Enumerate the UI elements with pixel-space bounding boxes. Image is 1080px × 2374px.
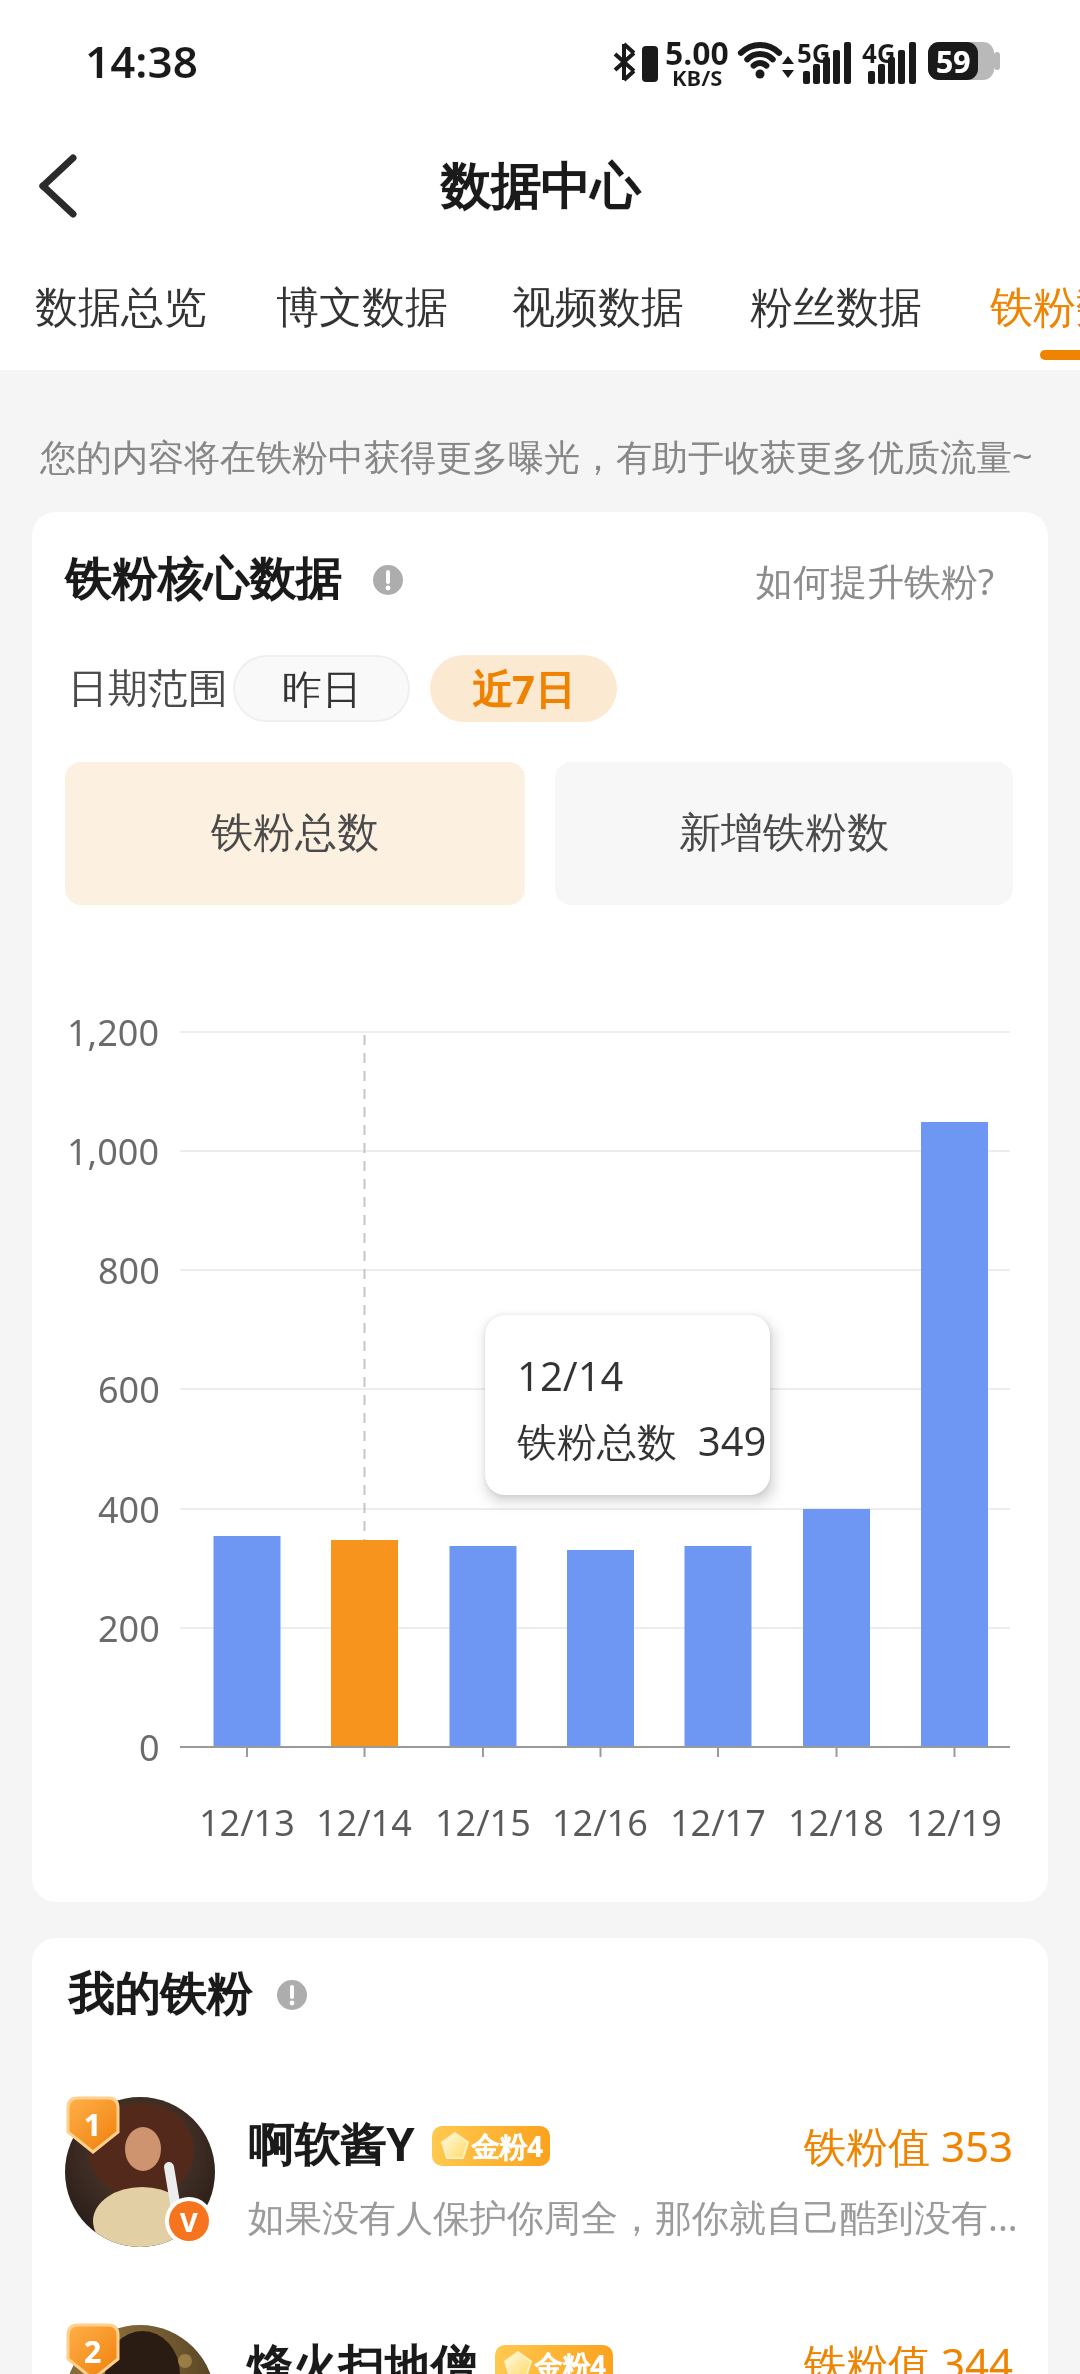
staticText: V — [180, 2203, 198, 2240]
staticText: 博文数据 — [276, 281, 448, 335]
staticText: 数据总览 — [35, 281, 207, 335]
staticText: KB/S — [672, 62, 723, 92]
staticText: 2 — [84, 2331, 102, 2372]
staticText: 1 — [84, 2104, 102, 2145]
staticText: 12/13 — [199, 1798, 295, 1847]
staticText: 5G — [797, 35, 831, 70]
staticText: 铁粉总数 — [211, 807, 379, 860]
staticText: 金粉4 — [534, 2346, 607, 2374]
button[interactable]: 昨日 — [233, 655, 410, 722]
staticText: 昨日 — [282, 664, 362, 714]
staticText: 12/19 — [906, 1798, 1002, 1847]
staticText: 12/18 — [788, 1798, 884, 1847]
staticText: 0 — [139, 1723, 160, 1772]
staticText: 如何提升铁粉? — [756, 555, 995, 606]
button[interactable]: 近7日 — [430, 655, 617, 722]
staticText: 12/15 — [435, 1798, 531, 1847]
staticText: 1,000 — [67, 1127, 160, 1176]
staticText: 日期范围 — [68, 663, 228, 713]
staticText: 铁粉核心数据 — [65, 551, 341, 609]
staticText: 啊软酱Y — [248, 2112, 415, 2175]
staticText: 800 — [98, 1246, 160, 1295]
staticText: 12/14 — [316, 1798, 412, 1847]
staticText: 1,200 — [67, 1008, 160, 1057]
staticText: 200 — [98, 1604, 160, 1653]
staticText: 14:38 — [85, 31, 198, 91]
staticText: 数据中心 — [440, 156, 640, 219]
staticText: 我的铁粉 — [68, 1966, 252, 2024]
staticText: 视频数据 — [512, 281, 684, 335]
staticText: 铁粉值 344 — [804, 2334, 1013, 2374]
staticText: 您的内容将在铁粉中获得更多曝光，有助于收获更多优质流量~ — [40, 432, 1033, 481]
staticText: 12/14 — [517, 1348, 624, 1402]
staticText: 4G — [862, 35, 896, 70]
button[interactable] — [35, 270, 207, 346]
button[interactable] — [750, 270, 922, 346]
button[interactable]: 新增铁粉数 — [555, 762, 1013, 905]
staticText: 如果没有人保护你周全，那你就自己酷到没有... — [248, 2191, 1018, 2242]
staticText: 铁粉数据 — [990, 281, 1080, 335]
button[interactable] — [20, 150, 100, 230]
staticText: 新增铁粉数 — [679, 807, 889, 860]
staticText: 金粉4 — [471, 2127, 544, 2165]
button[interactable]: 铁粉总数 — [65, 762, 525, 905]
staticText: 铁粉值 353 — [804, 2117, 1013, 2174]
staticText: 12/17 — [670, 1798, 766, 1847]
staticText: 烽火扫地僧 — [246, 2339, 476, 2374]
button[interactable] — [40, 2310, 1040, 2374]
button[interactable] — [40, 2080, 1040, 2270]
staticText: 59 — [936, 41, 971, 82]
button[interactable] — [750, 550, 1010, 610]
staticText: 400 — [98, 1485, 160, 1534]
staticText: 铁粉总数 349 — [517, 1413, 767, 1468]
staticText: 粉丝数据 — [750, 281, 922, 335]
staticText: 5.00 — [665, 31, 729, 75]
button[interactable] — [512, 270, 684, 346]
button[interactable] — [990, 270, 1080, 346]
staticText: 近7日 — [472, 661, 575, 716]
button[interactable] — [276, 270, 448, 346]
staticText: 12/16 — [552, 1798, 648, 1847]
staticText: 600 — [98, 1365, 160, 1414]
